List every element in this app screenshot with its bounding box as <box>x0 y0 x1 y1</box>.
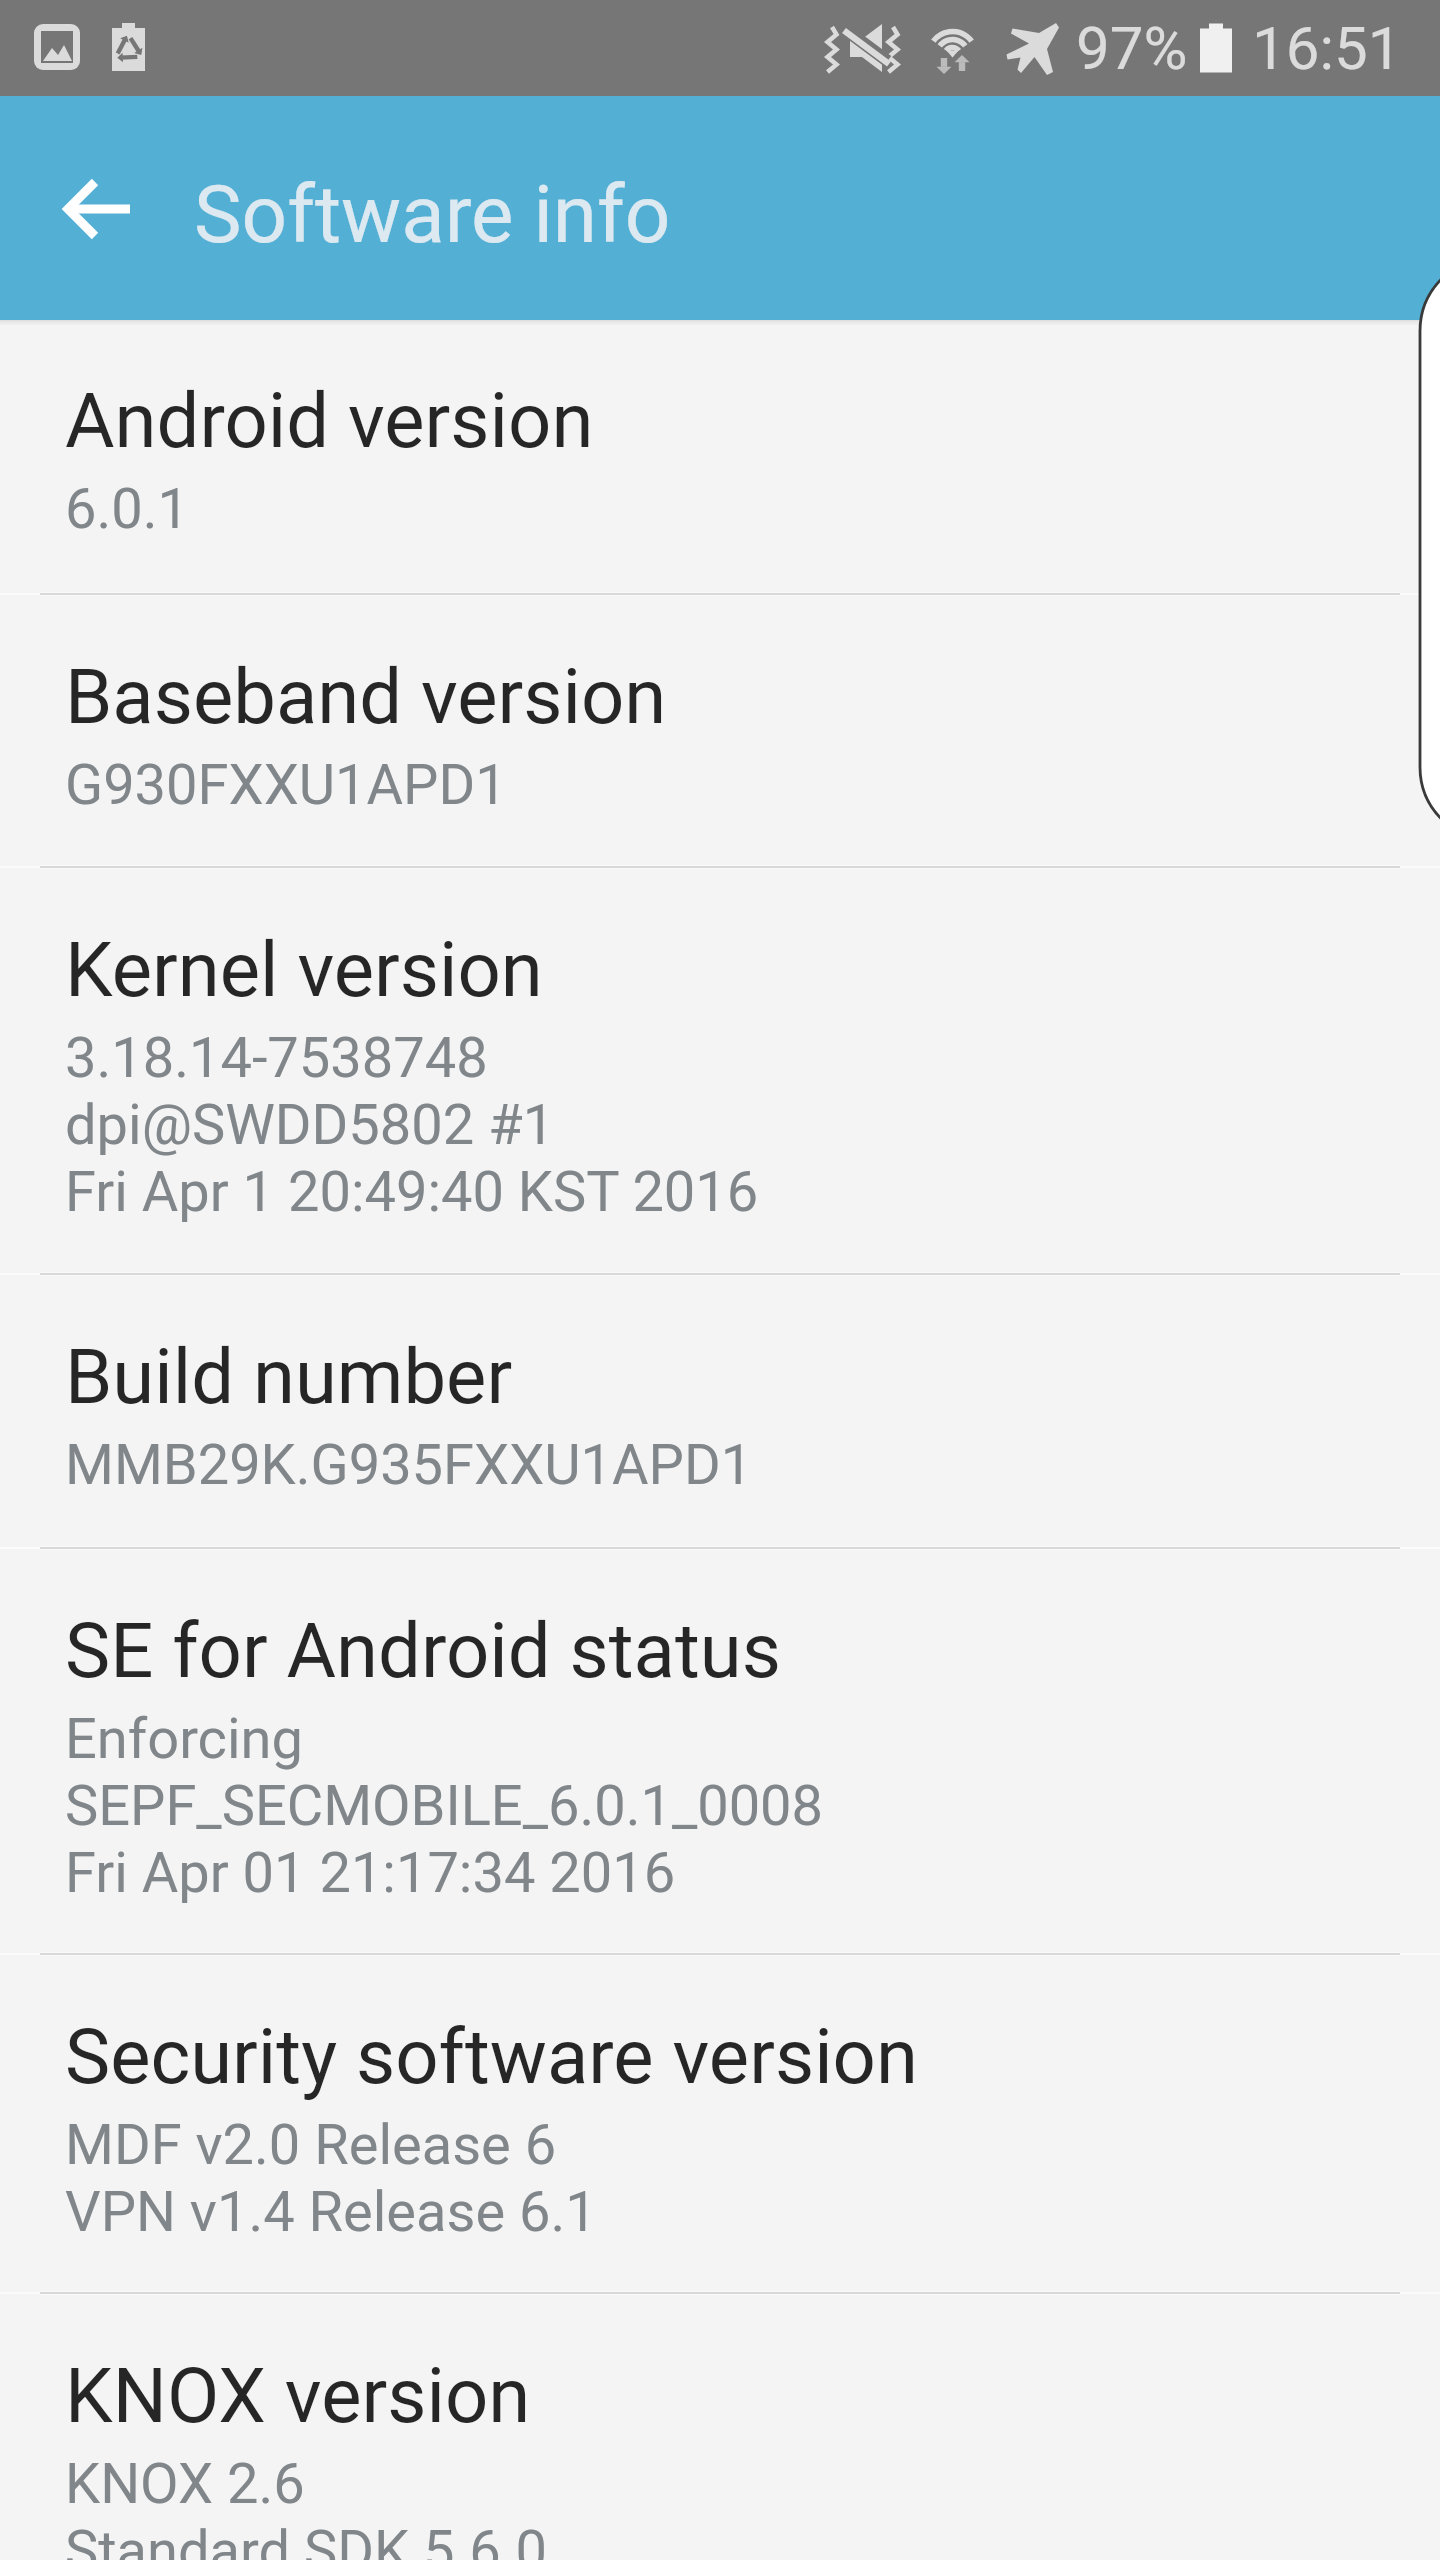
button[interactable]: SE for Android status <box>0 1550 1440 1952</box>
button[interactable]: Baseband version <box>0 596 1440 865</box>
button[interactable]: Android version <box>0 320 1440 592</box>
button[interactable]: Navigate up <box>28 140 164 276</box>
staticText: Kernel version <box>65 933 543 1013</box>
staticText: Android version <box>65 384 594 464</box>
staticText: 16:51 <box>1252 15 1402 83</box>
button[interactable]: Kernel version <box>0 869 1440 1272</box>
staticText: Security software version <box>65 2020 918 2100</box>
staticText: Fri Apr 01 21:17:34 2016 <box>65 1839 676 1906</box>
staticText: MDF v2.0 Release 6 <box>65 2111 557 2178</box>
staticText: SEPF_SECMOBILE_6.0.1_0008 <box>65 1772 824 1839</box>
staticText: MMB29K.G935FXXU1APD1 <box>65 1431 753 1498</box>
staticText: VPN v1.4 Release 6.1 <box>65 2178 597 2245</box>
staticText: 6.0.1 <box>65 475 189 542</box>
button[interactable]: KNOX version <box>0 2295 1440 2560</box>
button[interactable]: Build number <box>0 1276 1440 1546</box>
staticText: Fri Apr 1 20:49:40 KST 2016 <box>65 1158 759 1225</box>
staticText: Build number <box>65 1340 513 1420</box>
staticText: Baseband version <box>65 660 667 740</box>
staticText: G930FXXU1APD1 <box>65 751 507 818</box>
button[interactable]: Security software version <box>0 1956 1440 2291</box>
staticText: KNOX 2.6 <box>65 2450 305 2517</box>
staticText: KNOX version <box>65 2359 531 2439</box>
staticText: Software info <box>194 169 671 261</box>
staticText: 97% <box>1076 15 1188 83</box>
staticText: 3.18.14-7538748 <box>65 1024 488 1091</box>
staticText: SE for Android status <box>65 1614 781 1694</box>
staticText: dpi@SWDD5802 #1 <box>65 1091 555 1158</box>
staticText: Enforcing <box>65 1705 303 1772</box>
staticText: Standard SDK 5.6.0 <box>65 2517 547 2560</box>
